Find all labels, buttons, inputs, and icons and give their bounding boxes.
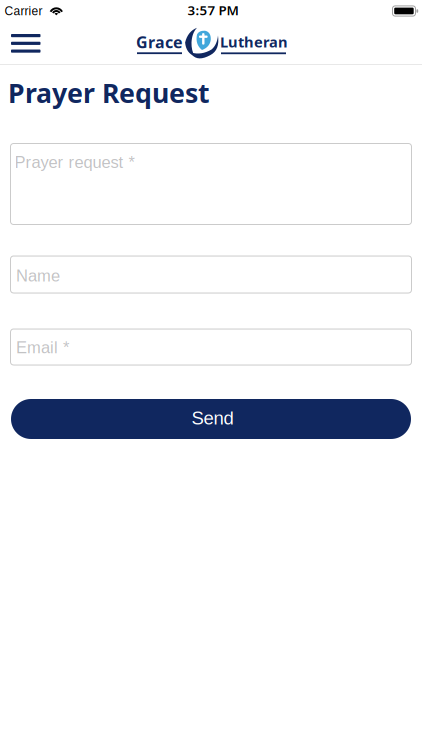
staticText: Carrier [4, 4, 42, 18]
staticText: Email * [16, 338, 69, 357]
staticText: 3:57 PM [187, 1, 238, 19]
button[interactable]: Send [11, 399, 411, 439]
staticText: Send [191, 408, 233, 428]
staticText: Prayer Request [8, 75, 210, 110]
staticText: Name [16, 266, 60, 285]
button[interactable]: Menu [0, 28, 51, 59]
button[interactable]: Name [10, 256, 411, 293]
button[interactable]: Prayer request * [10, 143, 411, 224]
staticText: Prayer request * [14, 153, 134, 171]
button[interactable]: Email * [10, 329, 411, 365]
staticText: Lutheran [220, 32, 288, 51]
staticText: Grace [136, 31, 183, 53]
